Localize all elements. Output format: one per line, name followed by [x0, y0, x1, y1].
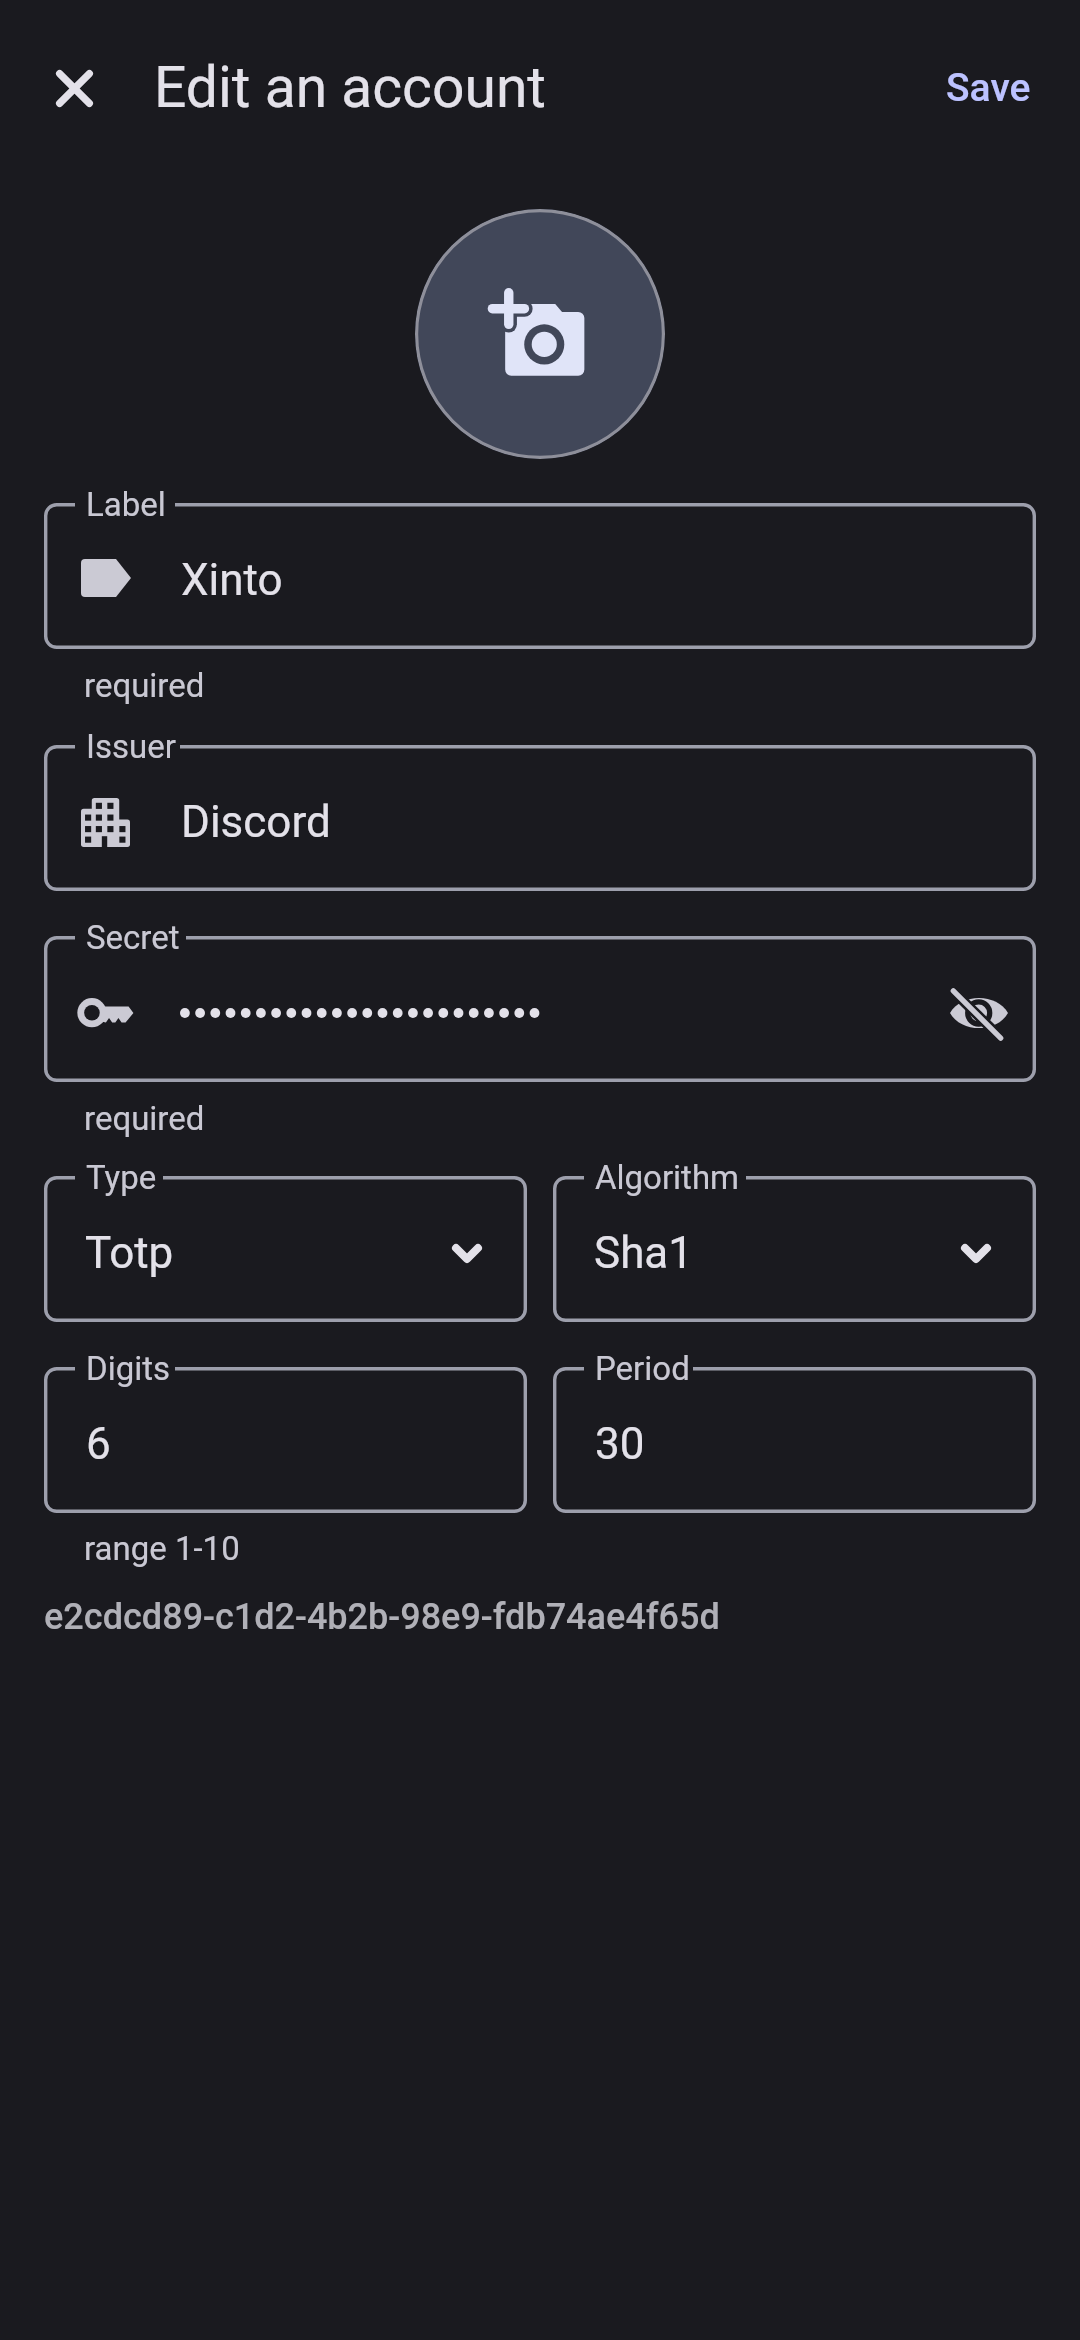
button[interactable]: Expand Type	[421, 1207, 513, 1299]
staticText: range 1-10	[84, 1529, 240, 1568]
button[interactable]: Sha1	[553, 1176, 1036, 1322]
staticText: required	[84, 1099, 205, 1138]
staticText: Secret	[86, 918, 180, 957]
staticText: Issuer	[86, 727, 176, 766]
staticText: 6	[86, 1418, 111, 1470]
staticText: Discord	[181, 796, 331, 848]
staticText: Edit an account	[154, 54, 547, 121]
button[interactable]: Expand Algorithm	[930, 1207, 1022, 1299]
button[interactable]: Discord	[44, 745, 1036, 891]
staticText: Sha1	[594, 1227, 694, 1279]
staticText: Type	[86, 1158, 157, 1197]
button[interactable]: Add a photo	[415, 209, 665, 459]
button[interactable]: Show secret	[931, 965, 1027, 1061]
staticText: required	[84, 666, 205, 705]
button[interactable]: Save	[918, 43, 1059, 133]
staticText: e2cdcd89-c1d2-4b2b-98e9-fdb74ae4f65d	[44, 1596, 720, 1638]
button[interactable]: Show secret	[44, 936, 1036, 1082]
staticText: Save	[946, 65, 1031, 111]
button[interactable]: Xinto	[44, 503, 1036, 649]
button[interactable]: Totp	[44, 1176, 527, 1322]
staticText: Totp	[85, 1227, 174, 1279]
staticText: Digits	[86, 1349, 171, 1388]
staticText: Label	[86, 485, 166, 524]
button[interactable]: 30	[553, 1367, 1036, 1513]
staticText: Algorithm	[595, 1158, 740, 1197]
staticText: Xinto	[181, 554, 283, 606]
staticText: 30	[595, 1418, 645, 1470]
staticText: Period	[595, 1349, 690, 1388]
button[interactable]: 6	[44, 1367, 527, 1513]
button[interactable]: Close	[30, 44, 118, 132]
